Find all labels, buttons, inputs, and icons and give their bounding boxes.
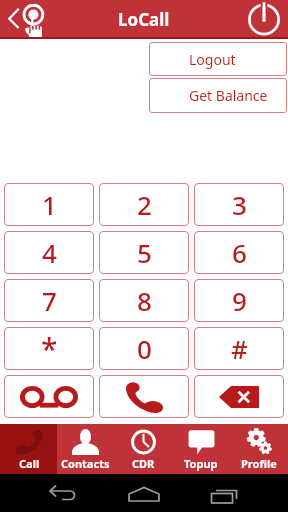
button[interactable]: 3 [194, 183, 284, 226]
staticText: 0 [137, 331, 152, 366]
button[interactable]: Logout [149, 42, 287, 76]
button[interactable]: 8 [99, 279, 189, 322]
button[interactable]: 4 [4, 231, 94, 274]
staticText: Get Balance [189, 86, 268, 105]
button[interactable]: Call [99, 375, 189, 418]
button[interactable]: Backspace [194, 375, 284, 418]
button[interactable]: 2 [99, 183, 189, 226]
staticText: Call [19, 456, 40, 471]
button[interactable]: Profile [230, 424, 288, 474]
staticText: 3 [232, 187, 247, 222]
button[interactable]: 7 [4, 279, 94, 322]
button[interactable]: 1 [4, 183, 94, 226]
staticText: LoCall [118, 8, 170, 31]
button[interactable]: Topup [172, 424, 230, 474]
staticText: Topup [184, 456, 218, 471]
button[interactable]: Power off [238, 0, 288, 39]
staticText: 4 [42, 235, 57, 270]
button[interactable]: 6 [194, 231, 284, 274]
button[interactable]: # [194, 327, 284, 370]
staticText: 8 [137, 283, 152, 318]
button[interactable]: Voicemail [4, 375, 94, 418]
button[interactable]: Contacts [57, 424, 114, 474]
staticText: 6 [232, 235, 247, 270]
staticText: # [231, 331, 248, 366]
button[interactable]: 5 [99, 231, 189, 274]
staticText: 1 [42, 187, 57, 222]
button[interactable]: 9 [194, 279, 284, 322]
button[interactable]: Call [0, 424, 57, 474]
staticText: 9 [232, 283, 247, 318]
button[interactable]: * [4, 327, 94, 370]
staticText: 2 [137, 187, 152, 222]
staticText: 5 [137, 235, 152, 270]
staticText: 7 [42, 283, 57, 318]
button[interactable]: CDR [114, 424, 172, 474]
staticText: CDR [132, 456, 155, 471]
button[interactable]: Back [0, 0, 48, 39]
button[interactable]: Get Balance [149, 78, 287, 113]
staticText: Contacts [61, 456, 110, 471]
staticText: * [41, 328, 58, 369]
staticText: Profile [241, 456, 277, 471]
staticText: Logout [189, 50, 236, 69]
button[interactable]: 0 [99, 327, 189, 370]
